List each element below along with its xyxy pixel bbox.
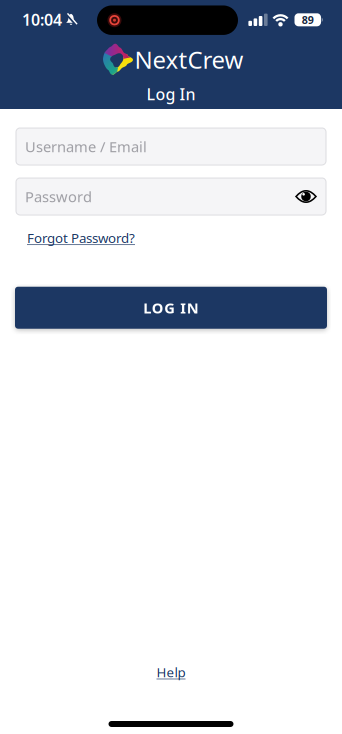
staticText: Forgot Password? xyxy=(27,229,135,247)
button[interactable]: Help xyxy=(156,663,185,681)
button[interactable]: Password xyxy=(16,178,326,215)
staticText: Help xyxy=(156,663,185,681)
staticText: Password xyxy=(25,187,92,206)
staticText: Log In xyxy=(146,83,195,105)
staticText: 10:04 xyxy=(22,9,62,30)
button[interactable]: Username / Email xyxy=(16,128,326,165)
button[interactable]: LOG IN xyxy=(15,287,327,329)
staticText: LOG IN xyxy=(143,298,199,317)
button[interactable]: Forgot Password? xyxy=(27,229,135,247)
staticText: 89 xyxy=(302,13,314,27)
staticText: Username / Email xyxy=(25,137,147,156)
staticText: NextCrew xyxy=(134,44,243,75)
button[interactable]: Show password xyxy=(294,188,318,204)
